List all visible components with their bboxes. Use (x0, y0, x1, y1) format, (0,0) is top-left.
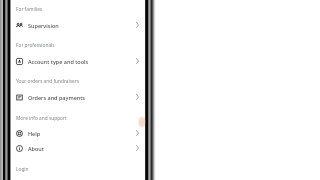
staticText: About (28, 145, 44, 152)
staticText: Your orders and fundraisers (16, 78, 80, 85)
staticText: For families (16, 6, 43, 13)
button[interactable]: Help (9, 125, 144, 141)
button[interactable]: About (9, 140, 144, 156)
staticText: Help (28, 130, 41, 137)
staticText: More info and support (16, 115, 67, 122)
button[interactable]: Account type and tools (9, 53, 144, 69)
staticText: For professionals (16, 42, 55, 49)
button[interactable]: Supervision (9, 17, 144, 33)
button[interactable]: Orders and payments (9, 89, 144, 105)
staticText: Login (16, 166, 29, 173)
staticText: Orders and payments (28, 94, 86, 101)
staticText: Supervision (28, 22, 59, 29)
staticText: Account type and tools (28, 58, 89, 65)
